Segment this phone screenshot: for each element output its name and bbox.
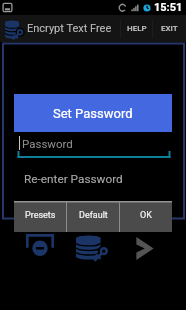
staticText: EXIT — [161, 24, 178, 33]
staticText: 15:51 — [154, 1, 183, 14]
staticText: Set Password — [53, 106, 133, 121]
staticText: Re-enter Password — [24, 172, 123, 186]
button[interactable]: Database — [76, 235, 109, 260]
staticText: Default — [79, 210, 108, 221]
staticText: HELP — [127, 24, 147, 33]
staticText: Encrypt Text Free — [27, 22, 112, 35]
button[interactable]: Next — [133, 236, 157, 261]
button[interactable]: Re-enter Password — [24, 168, 178, 190]
button[interactable]: Default — [67, 201, 119, 232]
button[interactable]: HELP — [121, 15, 152, 42]
button[interactable]: Password — [19, 132, 177, 154]
button[interactable]: EXIT — [153, 15, 186, 42]
button[interactable]: Paste clipboard — [26, 234, 54, 256]
staticText: OK — [140, 210, 152, 221]
staticText: Password — [22, 137, 73, 150]
button[interactable]: OK — [120, 201, 172, 232]
button[interactable]: Presets — [14, 201, 66, 232]
staticText: Presets — [25, 210, 56, 221]
